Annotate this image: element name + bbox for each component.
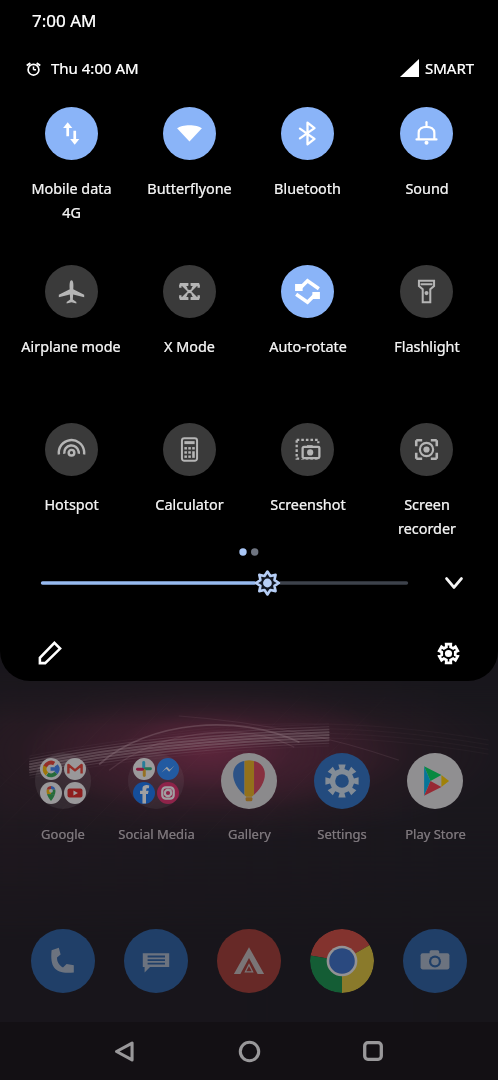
- staticText: Butterflyone: [147, 179, 232, 199]
- button[interactable]: Gallery: [203, 753, 295, 843]
- staticText: Gallery: [228, 825, 271, 843]
- staticText: Sound: [405, 179, 449, 199]
- button[interactable]: [124, 929, 188, 993]
- staticText: X Mode: [164, 337, 215, 357]
- staticText: Flashlight: [394, 337, 460, 357]
- staticText: Hotspot: [44, 495, 99, 515]
- button[interactable]: Screen: [367, 411, 486, 539]
- staticText: Auto-rotate: [269, 337, 347, 357]
- staticText: recorder: [398, 519, 456, 539]
- button[interactable]: Edit tiles: [30, 633, 70, 673]
- button[interactable]: Butterflyone: [130, 95, 248, 199]
- button[interactable]: Auto-rotate: [248, 253, 367, 357]
- button[interactable]: Home: [225, 1027, 273, 1075]
- button[interactable]: Back: [100, 1027, 148, 1075]
- button[interactable]: Sound: [367, 95, 486, 199]
- staticText: Settings: [317, 825, 367, 843]
- button[interactable]: [403, 929, 467, 993]
- button[interactable]: Calculator: [130, 411, 248, 515]
- staticText: Google: [41, 825, 85, 843]
- button[interactable]: [217, 929, 281, 993]
- button[interactable]: Brightness: [41, 568, 408, 598]
- button[interactable]: Screenshot: [248, 411, 367, 515]
- staticText: Screen: [404, 495, 450, 515]
- button[interactable]: Play Store: [389, 753, 481, 843]
- button[interactable]: Airplane mode: [12, 253, 130, 357]
- staticText: Play Store: [405, 825, 466, 843]
- button[interactable]: Settings: [296, 753, 388, 843]
- button[interactable]: [310, 929, 374, 993]
- button[interactable]: Flashlight: [367, 253, 486, 357]
- button[interactable]: X Mode: [130, 253, 248, 357]
- button[interactable]: Hotspot: [12, 411, 130, 515]
- staticText: Calculator: [155, 495, 224, 515]
- button[interactable]: Mobile data: [12, 95, 130, 223]
- staticText: 4G: [62, 203, 81, 223]
- staticText: Bluetooth: [274, 179, 341, 199]
- button[interactable]: Social Media: [110, 753, 202, 843]
- staticText: Screenshot: [270, 495, 346, 515]
- button[interactable]: Settings: [428, 633, 468, 673]
- staticText: SMART: [425, 58, 475, 78]
- staticText: Mobile data: [31, 179, 112, 199]
- staticText: 7:00 AM: [32, 9, 97, 32]
- button[interactable]: Expand quick settings: [434, 568, 474, 598]
- staticText: Airplane mode: [21, 337, 121, 357]
- button[interactable]: Google: [17, 753, 109, 843]
- staticText: Thu 4:00 AM: [51, 58, 139, 78]
- button[interactable]: [31, 929, 95, 993]
- button[interactable]: Recents: [349, 1027, 397, 1075]
- button[interactable]: Bluetooth: [248, 95, 367, 199]
- staticText: Social Media: [118, 825, 195, 843]
